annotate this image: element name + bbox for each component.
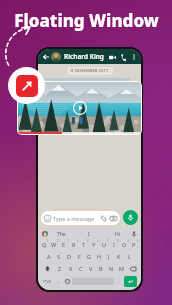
button[interactable]: Voice call [118,52,128,62]
button[interactable]: , [54,276,63,287]
staticText: G [87,253,92,260]
button[interactable]: Enter [124,276,137,287]
staticText: T [82,241,86,248]
staticText: Floating Window [14,9,159,32]
staticText: . [118,278,120,285]
button[interactable]: B [96,263,106,274]
staticText: Q [42,241,47,248]
staticText: 9 [127,239,129,243]
button[interactable]: W [49,239,59,250]
staticText: 7 [107,239,109,243]
button[interactable]: M [116,263,126,274]
button[interactable]: . [114,276,123,287]
button[interactable]: V [86,263,96,274]
staticText: 2 [57,239,59,243]
staticText: F [78,253,81,260]
button[interactable]: T [79,239,89,250]
button[interactable]: Back [41,52,50,61]
staticText: 3 [67,239,69,243]
button[interactable]: H [94,251,104,262]
button[interactable]: The [48,231,75,238]
staticText: E [62,241,66,248]
staticText: L [128,253,131,260]
button[interactable]: D [64,251,74,262]
staticText: J [108,253,110,260]
button[interactable]: Voice input [131,231,137,237]
staticText: The [57,231,66,238]
staticText: Richard King [64,52,107,61]
button[interactable]: N [106,263,116,274]
staticText: R [72,241,76,248]
staticText: 8 [117,239,119,243]
button[interactable]: R [69,239,79,250]
staticText: I [113,241,115,248]
staticText: , [58,278,60,285]
button[interactable]: K [114,251,124,262]
staticText: K [117,253,121,260]
button[interactable]: Backspace [126,263,139,274]
button[interactable]: Floating video player [18,82,141,134]
staticText: Y [92,241,96,248]
button[interactable]: Emoji [63,276,72,287]
staticText: Hi [115,231,120,238]
staticText: U [102,241,107,248]
staticText: Type a message [53,215,100,222]
button[interactable]: Profile photo [51,52,61,62]
button[interactable]: I [75,231,103,238]
staticText: I [88,231,90,238]
button[interactable]: Shift [40,263,54,274]
staticText: D [67,253,72,260]
button[interactable]: P [129,239,139,250]
staticText: N [109,265,114,272]
staticText: 0 [137,239,139,243]
button[interactable]: G [84,251,94,262]
staticText: 5 [87,239,89,243]
staticText: A [47,253,51,260]
button[interactable]: X [65,263,76,274]
button[interactable]: O [119,239,129,250]
button[interactable]: F [74,251,84,262]
staticText: V [89,265,93,272]
staticText: H [97,253,102,260]
staticText: Z [58,265,62,272]
staticText: W [51,241,57,248]
staticText: 8 NOVEMBER 2017 [71,68,109,74]
button[interactable]: Y [89,239,99,250]
button[interactable]: Type a message [41,211,120,225]
staticText: B [99,265,103,272]
button[interactable]: More options [129,52,138,61]
staticText: 6 [97,239,99,243]
staticText: 1 [47,239,49,243]
staticText: C [79,265,83,272]
button[interactable]: Hi [103,231,131,238]
button[interactable]: J [104,251,114,262]
button[interactable]: E [59,239,69,250]
button[interactable]: Attach [100,215,107,222]
staticText: ?123 [43,279,52,284]
button[interactable]: Video call [107,52,117,62]
staticText: S [57,253,61,260]
button[interactable]: A [44,251,54,262]
staticText: 4 [77,239,79,243]
staticText: X [69,265,73,272]
staticText: M [119,265,124,272]
button[interactable]: U [99,239,109,250]
button[interactable]: Q [40,239,49,250]
button[interactable]: C [76,263,86,274]
button[interactable]: ?123 [41,276,54,287]
staticText: O [122,241,127,248]
button[interactable]: Z [54,263,65,274]
button[interactable]: Record voice message [123,210,138,225]
button[interactable]: Camera [110,215,117,222]
button[interactable]: I [109,239,119,250]
button[interactable]: S [54,251,64,262]
button[interactable]: Open in floating window [8,67,45,104]
button[interactable]: L [124,251,134,262]
staticText: P [132,241,136,248]
